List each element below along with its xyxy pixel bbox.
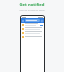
button[interactable]: [25, 19, 40, 22]
button[interactable]: [21, 23, 44, 27]
button[interactable]: [21, 35, 44, 38]
staticText: Stay up to date on alerts: [0, 9, 64, 12]
button[interactable]: [21, 31, 44, 35]
button[interactable]: Menu: [21, 18, 44, 23]
button[interactable]: [21, 27, 44, 31]
staticText: Get notified: [0, 2, 64, 8]
